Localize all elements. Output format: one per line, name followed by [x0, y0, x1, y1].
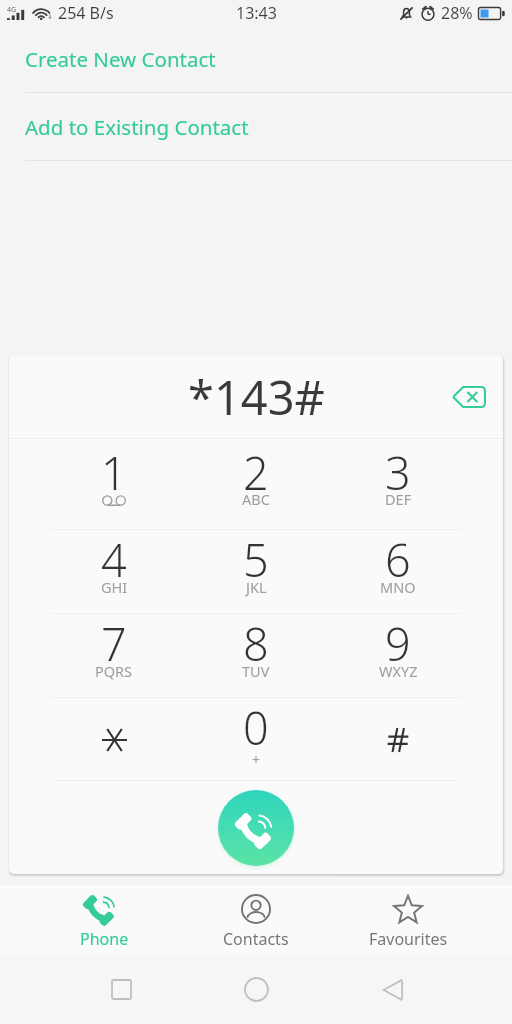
staticText: Create New Contact: [25, 45, 216, 73]
button[interactable]: Phone: [28, 885, 180, 955]
staticText: 7: [101, 613, 127, 674]
button[interactable]: 6: [327, 530, 469, 613]
staticText: *143#: [188, 365, 325, 429]
button[interactable]: 9: [327, 614, 469, 697]
button[interactable]: 5: [185, 530, 327, 613]
staticText: MNO: [380, 577, 416, 597]
button[interactable]: 2: [185, 439, 327, 529]
button[interactable]: 8: [185, 614, 327, 697]
staticText: DEF: [385, 489, 412, 509]
staticText: ABC: [242, 489, 270, 509]
button[interactable]: 7: [43, 614, 185, 697]
button[interactable]: Contacts: [180, 885, 332, 955]
button[interactable]: Backspace: [445, 373, 493, 421]
staticText: 0: [243, 697, 269, 758]
staticText: Add to Existing Contact: [25, 113, 249, 141]
staticText: 2: [243, 442, 269, 503]
button[interactable]: 1: [43, 439, 185, 529]
staticText: Phone: [80, 928, 129, 950]
staticText: TUV: [242, 661, 270, 681]
staticText: 6: [385, 529, 411, 590]
staticText: 3: [385, 442, 411, 503]
button[interactable]: Add to Existing Contact: [0, 93, 512, 160]
button[interactable]: Favourites: [332, 885, 484, 955]
button[interactable]: Recent apps: [53, 955, 189, 1024]
button[interactable]: 3: [327, 439, 469, 529]
staticText: Contacts: [223, 928, 289, 950]
staticText: 28%: [441, 2, 473, 24]
staticText: 254 B/s: [58, 2, 114, 24]
staticText: Favourites: [369, 928, 448, 950]
staticText: 4G: [7, 5, 17, 15]
staticText: 4: [101, 529, 127, 590]
button[interactable]: Back: [324, 955, 459, 1024]
staticText: +: [252, 750, 261, 769]
staticText: GHI: [101, 577, 128, 597]
staticText: 1: [101, 442, 127, 503]
button[interactable]: [43, 698, 185, 780]
staticText: 5: [243, 529, 269, 590]
staticText: 9: [385, 613, 411, 674]
staticText: 13:43: [236, 2, 277, 24]
staticText: WXYZ: [379, 661, 418, 681]
staticText: JKL: [246, 577, 267, 597]
button[interactable]: Call: [218, 790, 294, 866]
button[interactable]: Home: [189, 955, 324, 1024]
button[interactable]: Create New Contact: [0, 26, 512, 92]
button[interactable]: [327, 698, 469, 780]
button[interactable]: 4: [43, 530, 185, 613]
button[interactable]: 0: [185, 698, 327, 780]
staticText: PQRS: [95, 661, 133, 681]
staticText: 8: [243, 613, 269, 674]
